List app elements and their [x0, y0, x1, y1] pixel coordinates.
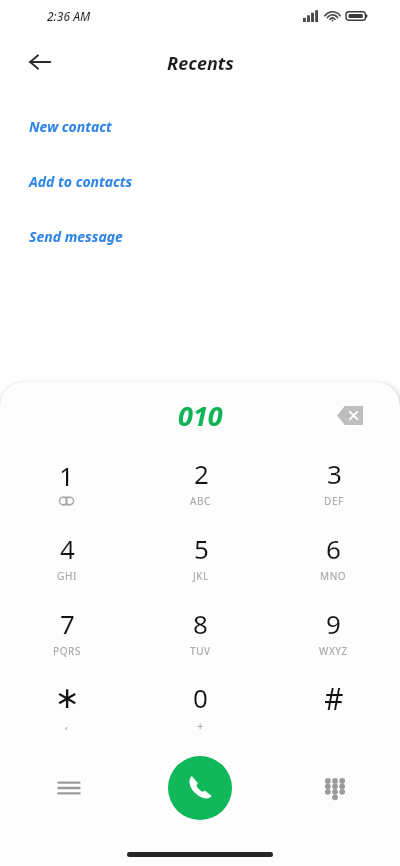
staticText: 3 [327, 456, 342, 491]
button[interactable]: 4 [0, 519, 133, 594]
staticText: 010 [178, 397, 223, 434]
button[interactable]: Call [168, 756, 232, 820]
staticText: PQRS [53, 644, 81, 658]
staticText: , [65, 717, 69, 732]
staticText: JKL [193, 569, 209, 583]
staticText: # [324, 678, 344, 719]
staticText: Recents [167, 51, 234, 76]
staticText: 9 [326, 606, 341, 641]
staticText: 6 [326, 531, 341, 566]
staticText: MNO [320, 569, 347, 583]
staticText: 2 [194, 456, 209, 491]
staticText: WXYZ [319, 644, 348, 658]
staticText: 5 [194, 531, 209, 566]
button[interactable]: 9 [267, 594, 400, 669]
button[interactable]: More options [45, 764, 93, 812]
button[interactable]: 1 [0, 444, 133, 519]
button[interactable]: 7 [0, 594, 133, 669]
button[interactable]: New contact [0, 112, 400, 140]
staticText: 4 [60, 531, 75, 566]
staticText: New contact [29, 117, 112, 136]
staticText: GHI [57, 569, 77, 583]
button[interactable]: ∗ [0, 669, 133, 744]
button[interactable]: 5 [134, 519, 267, 594]
staticText: 2:36 AM [47, 8, 91, 24]
staticText: TUV [190, 644, 211, 658]
button[interactable]: 3 [267, 444, 400, 519]
button[interactable]: Send message [0, 222, 400, 250]
button[interactable]: Keypad [309, 764, 357, 812]
staticText: Add to contacts [29, 172, 133, 191]
button[interactable]: 6 [267, 519, 400, 594]
staticText: 8 [193, 606, 208, 641]
staticText: ABC [190, 494, 212, 508]
staticText: + [197, 718, 204, 733]
button[interactable]: Backspace [328, 393, 372, 437]
button[interactable]: Add to contacts [0, 167, 400, 195]
staticText: 7 [60, 606, 75, 641]
staticText: 1 [59, 458, 74, 493]
staticText: ∗ [54, 680, 80, 715]
button[interactable]: 0 [134, 669, 267, 744]
button[interactable]: # [267, 669, 400, 744]
button[interactable]: Back [18, 40, 62, 84]
button[interactable]: 2 [134, 444, 267, 519]
staticText: 0 [193, 680, 208, 715]
staticText: DEF [324, 494, 344, 508]
button[interactable]: 8 [134, 594, 267, 669]
staticText: Send message [29, 227, 123, 246]
